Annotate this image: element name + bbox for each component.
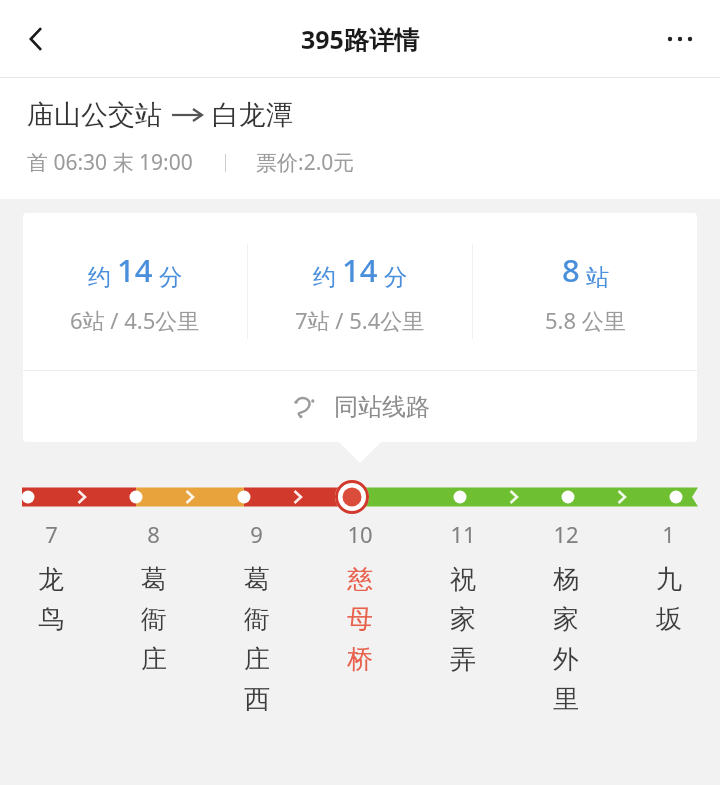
button[interactable]: 约 [248, 249, 472, 335]
staticText: 7站 / 5.4公里 [295, 305, 425, 335]
staticText: 桥 [347, 643, 373, 676]
staticText: 葛 [141, 563, 167, 596]
staticText: 杨 [553, 563, 579, 596]
button[interactable]: 10 [308, 519, 411, 683]
staticText: 衙 [244, 603, 270, 636]
staticText: 首 06:30 末 19:00 [27, 148, 193, 177]
staticText: 14 [342, 249, 378, 291]
staticText: 分 [378, 260, 407, 291]
staticText: 西 [244, 683, 270, 716]
staticText: 同站线路 [334, 392, 430, 422]
staticText: 外 [553, 643, 579, 676]
staticText: 14 [117, 249, 153, 291]
button[interactable]: 8 [102, 519, 205, 683]
staticText: 弄 [450, 643, 476, 676]
staticText: 1 [662, 519, 675, 549]
button[interactable]: 同站线路 [23, 371, 697, 442]
staticText: 家 [450, 603, 476, 636]
staticText: 母 [347, 603, 373, 636]
staticText: 祝 [450, 563, 476, 596]
staticText: 站 [580, 260, 609, 291]
staticText: 约 [313, 260, 342, 291]
button[interactable]: 11 [411, 519, 514, 683]
staticText: 慈 [347, 563, 373, 596]
button[interactable]: 8 [473, 249, 697, 335]
staticText: 庙山公交站 [27, 98, 162, 132]
button[interactable]: 9 [205, 519, 308, 723]
staticText: 坂 [656, 603, 682, 636]
staticText: 票价:2.0元 [256, 148, 355, 177]
staticText: 8 [147, 519, 160, 549]
staticText: 12 [553, 519, 579, 549]
staticText: 5.8 公里 [545, 305, 626, 335]
staticText: 家 [553, 603, 579, 636]
staticText: 葛 [244, 563, 270, 596]
staticText: 7 [45, 519, 58, 549]
button[interactable]: 约 [23, 249, 247, 335]
staticText: 九 [656, 563, 682, 596]
button[interactable]: 1 [617, 519, 720, 643]
button[interactable]: 12 [514, 519, 617, 723]
staticText: 9 [250, 519, 263, 549]
staticText: 8 [562, 249, 580, 291]
staticText: 庄 [244, 643, 270, 676]
staticText: 庄 [141, 643, 167, 676]
staticText: 约 [88, 260, 117, 291]
button[interactable]: More options [652, 11, 708, 67]
staticText: 里 [553, 683, 579, 716]
staticText: 10 [347, 519, 373, 549]
staticText: 衙 [141, 603, 167, 636]
staticText: 分 [153, 260, 182, 291]
staticText: 11 [450, 519, 476, 549]
staticText: 6站 / 4.5公里 [70, 305, 200, 335]
staticText: 395路详情 [301, 22, 419, 56]
button[interactable]: Back [8, 11, 64, 67]
staticText: 龙 [38, 563, 64, 596]
staticText: 白龙潭 [212, 98, 293, 132]
staticText: 鸟 [38, 603, 64, 636]
button[interactable]: 7 [0, 519, 102, 643]
